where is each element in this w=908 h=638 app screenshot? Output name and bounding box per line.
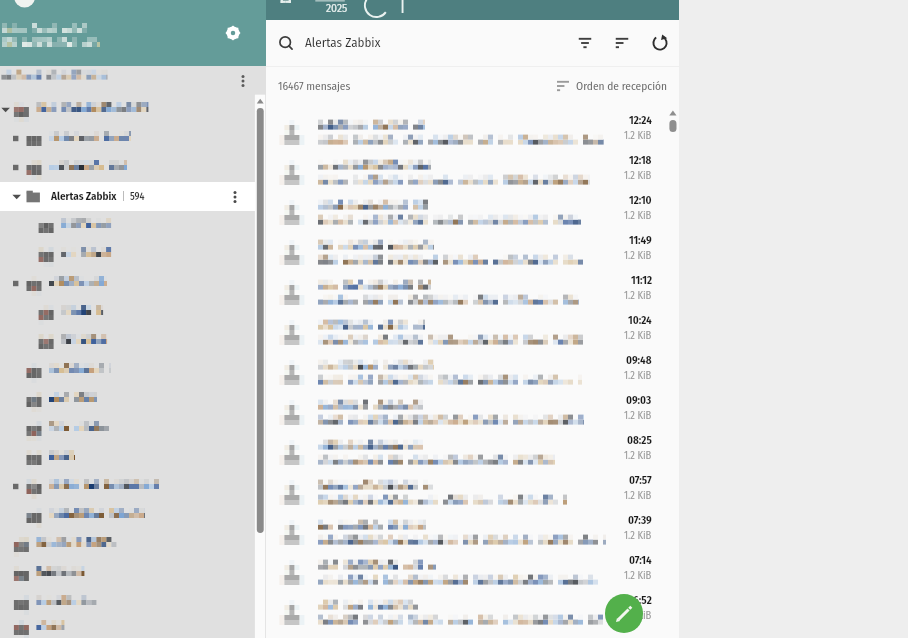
staticText: 09:48 <box>626 354 652 367</box>
button[interactable]: 12:24 <box>266 105 679 145</box>
staticText: 1.2 KiB <box>624 489 652 502</box>
button[interactable]: Compose new message <box>605 594 643 633</box>
button[interactable]: 10:24 <box>266 305 679 345</box>
button[interactable] <box>0 153 255 182</box>
button[interactable]: 07:57 <box>266 465 679 505</box>
staticText: 1.2 KiB <box>624 249 652 262</box>
staticText: 1.2 KiB <box>624 609 652 622</box>
button[interactable]: 07:39 <box>266 505 679 545</box>
staticText: 11:49 <box>629 234 652 247</box>
staticText: 08:25 <box>627 434 652 447</box>
button[interactable] <box>0 414 255 443</box>
button[interactable] <box>0 269 255 298</box>
staticText: 1.2 KiB <box>624 329 652 342</box>
staticText: 1.2 KiB <box>624 289 652 302</box>
button[interactable]: Filter <box>570 28 600 58</box>
staticText: 1.2 KiB <box>624 169 652 182</box>
staticText: 12:24 <box>629 114 652 127</box>
staticText: 06:52 <box>627 594 652 607</box>
staticText: 1.2 KiB <box>624 529 652 542</box>
button[interactable]: Refresh <box>645 28 675 58</box>
button[interactable]: More options <box>232 70 254 92</box>
staticText: 1.2 KiB <box>624 409 652 422</box>
staticText: Orden de recepción <box>576 79 667 93</box>
button[interactable] <box>0 124 255 153</box>
button[interactable]: 08:25 <box>266 425 679 465</box>
staticText: 1.2 KiB <box>624 569 652 582</box>
button[interactable]: 11:49 <box>266 225 679 265</box>
button[interactable]: 09:03 <box>266 385 679 425</box>
button[interactable]: 12:10 <box>266 185 679 225</box>
button[interactable]: 06:52 <box>266 585 679 625</box>
staticText: 2025 <box>326 1 348 15</box>
button[interactable] <box>0 298 255 327</box>
button[interactable] <box>0 240 255 269</box>
button[interactable] <box>0 356 255 385</box>
button[interactable]: 11:12 <box>266 265 679 305</box>
button[interactable] <box>0 501 255 530</box>
staticText: 07:39 <box>628 514 652 527</box>
button[interactable]: Folder options <box>224 186 246 208</box>
staticText: 10:24 <box>628 314 652 327</box>
button[interactable] <box>0 211 255 240</box>
button[interactable]: Sort <box>607 28 637 58</box>
staticText: Alertas Zabbix <box>305 35 381 51</box>
staticText: 11:12 <box>631 274 652 287</box>
staticText: 1.2 KiB <box>624 449 652 462</box>
button[interactable] <box>0 617 255 638</box>
button[interactable] <box>0 559 255 588</box>
staticText: 594 <box>130 191 145 203</box>
staticText: Alertas Zabbix <box>51 190 117 203</box>
button[interactable] <box>0 530 255 559</box>
button[interactable]: Alertas Zabbix <box>0 182 255 211</box>
button[interactable]: More options <box>0 66 266 95</box>
staticText: 16467 mensajes <box>278 79 351 93</box>
button[interactable]: Orden de recepción <box>556 79 667 93</box>
button[interactable]: Account settings <box>220 20 246 46</box>
staticText: 12:18 <box>629 154 652 167</box>
staticText: 07:57 <box>629 474 652 487</box>
staticText: 1.2 KiB <box>624 129 652 142</box>
staticText: | <box>117 191 130 203</box>
staticText: 07:14 <box>629 554 652 567</box>
button[interactable]: 09:48 <box>266 345 679 385</box>
button[interactable] <box>0 327 255 356</box>
button[interactable] <box>0 443 255 472</box>
button[interactable] <box>0 472 255 501</box>
button[interactable]: 07:14 <box>266 545 679 585</box>
staticText: 1.2 KiB <box>624 369 652 382</box>
button[interactable] <box>0 588 255 617</box>
button[interactable] <box>0 95 255 124</box>
button[interactable]: Search <box>273 30 299 56</box>
staticText: 12:10 <box>629 194 652 207</box>
button[interactable]: Account settings <box>0 0 266 66</box>
button[interactable]: 12:18 <box>266 145 679 185</box>
staticText: 09:03 <box>626 394 652 407</box>
staticText: 1.2 KiB <box>624 209 652 222</box>
button[interactable] <box>0 385 255 414</box>
